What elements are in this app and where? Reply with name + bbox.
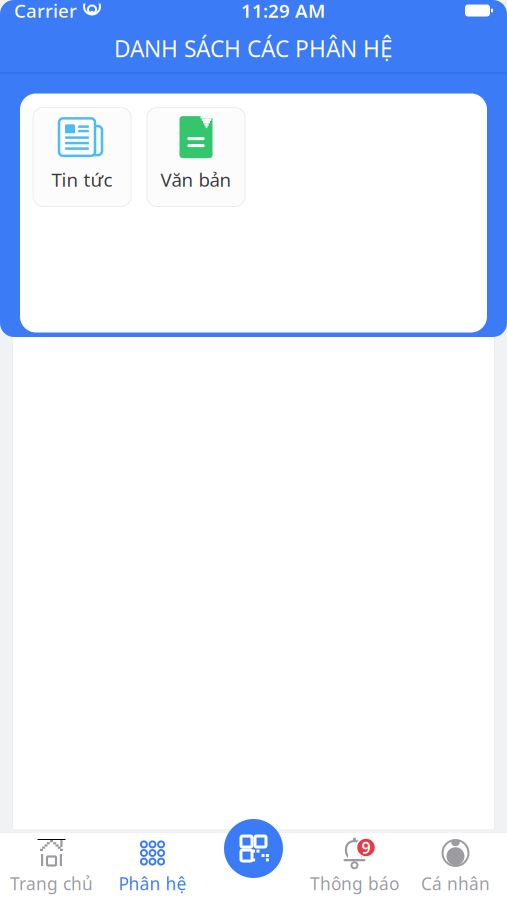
staticText: Phân hệ — [118, 872, 186, 895]
staticText: 9 — [361, 837, 370, 858]
button[interactable]: Văn bản — [147, 107, 245, 206]
staticText: Trang chủ — [10, 872, 93, 895]
button[interactable]: Cá nhân — [405, 833, 506, 900]
button[interactable]: Scan QR code — [224, 819, 283, 878]
button[interactable]: Trang chủ — [1, 833, 102, 900]
staticText: Tin tức — [51, 167, 112, 192]
button[interactable]: Phân hệ — [102, 833, 203, 900]
staticText: 11:29 AM — [241, 0, 325, 23]
staticText: Văn bản — [160, 167, 231, 192]
staticText: Cá nhân — [421, 872, 490, 895]
button[interactable]: 9 — [304, 833, 405, 900]
staticText: Thông báo — [310, 872, 399, 895]
staticText: Carrier — [14, 0, 77, 23]
button[interactable]: Tin tức — [33, 107, 131, 206]
staticText: DANH SÁCH CÁC PHÂN HỆ — [114, 33, 393, 63]
